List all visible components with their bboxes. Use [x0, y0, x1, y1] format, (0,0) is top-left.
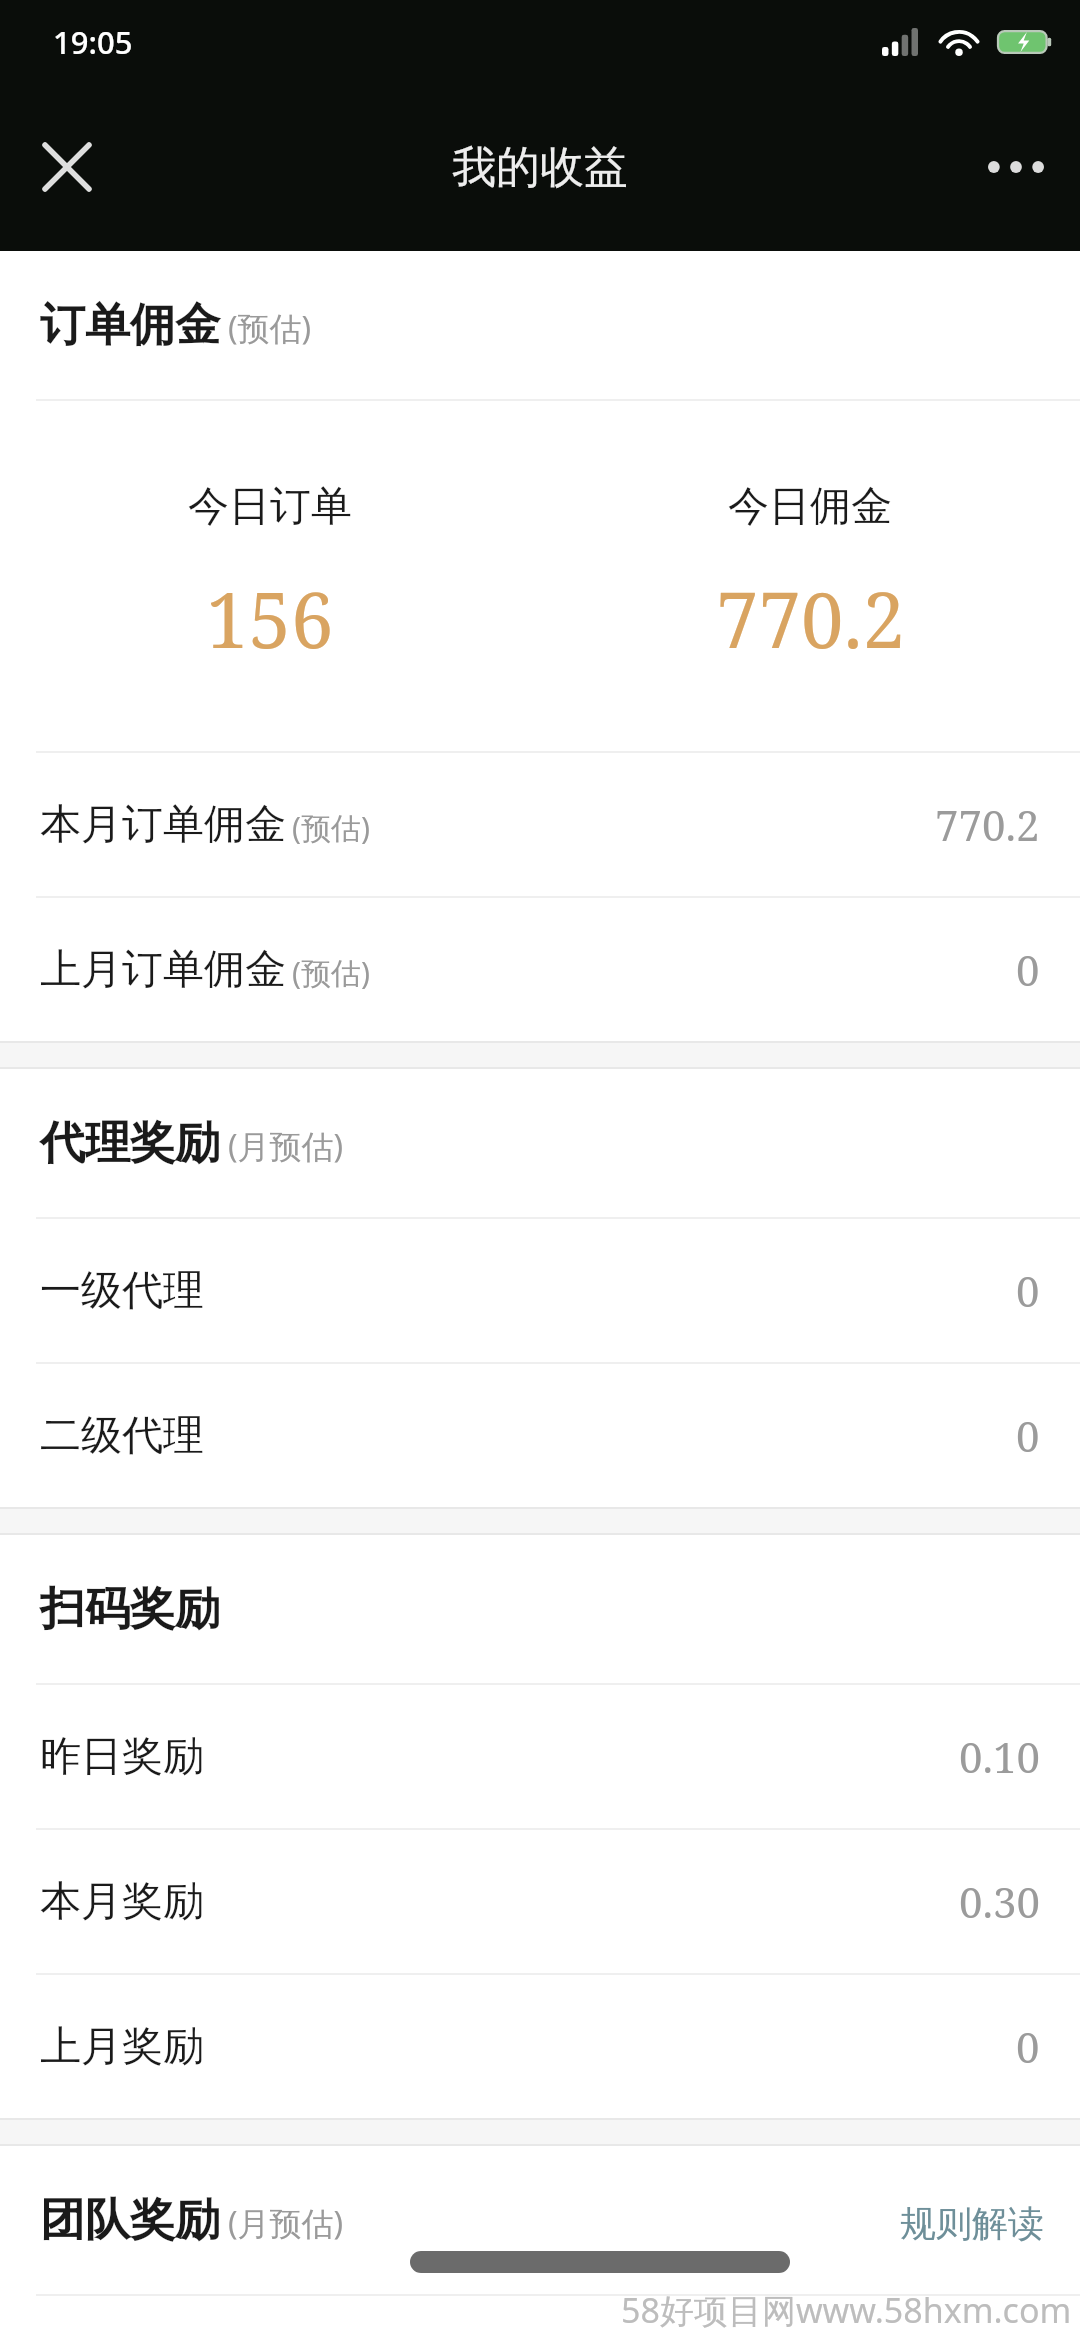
button[interactable]: Close	[30, 130, 104, 204]
staticText: 0.10	[959, 1728, 1040, 1785]
staticText: 0	[1016, 2018, 1040, 2075]
staticText: 团队奖励	[40, 2192, 220, 2249]
staticText: 0	[1016, 1407, 1040, 1464]
button[interactable]: 一级代理	[0, 1219, 1080, 1362]
staticText: 本月订单佣金	[40, 799, 286, 851]
button[interactable]: More options	[978, 129, 1054, 205]
button[interactable]: 二级代理	[0, 1364, 1080, 1507]
button[interactable]: 本月奖励	[0, 1830, 1080, 1973]
staticText: (预估)	[292, 807, 370, 848]
button[interactable]: 规则解读	[900, 2201, 1044, 2246]
staticText: 代理奖励	[40, 1115, 220, 1172]
staticText: 上月订单佣金	[40, 944, 286, 996]
staticText: 订单佣金	[40, 297, 220, 354]
staticText: 今日佣金	[728, 481, 892, 533]
button[interactable]: 上月奖励	[0, 1975, 1080, 2118]
staticText: 我的收益	[452, 140, 628, 195]
staticText: 0	[1016, 941, 1040, 998]
staticText: 扫码奖励	[40, 1581, 220, 1638]
button[interactable]: 今日佣金	[540, 481, 1080, 671]
button[interactable]: 昨日奖励	[0, 1685, 1080, 1828]
staticText: (月预估)	[228, 1124, 344, 1168]
staticText: 昨日奖励	[40, 1731, 204, 1783]
staticText: 本月奖励	[40, 1876, 204, 1928]
staticText: (预估)	[292, 952, 370, 993]
staticText: 0	[1016, 1262, 1040, 1319]
staticText: 770.2	[935, 796, 1040, 853]
staticText: (预估)	[228, 306, 312, 350]
staticText: 19:05	[53, 21, 133, 63]
staticText: 今日订单	[188, 481, 352, 533]
staticText: 一级代理	[40, 1265, 204, 1317]
button[interactable]: 本月订单佣金	[0, 753, 1080, 896]
staticText: 二级代理	[40, 1410, 204, 1462]
staticText: 58好项目网www.58hxm.com	[621, 2287, 1072, 2333]
staticText: 770.2	[716, 567, 905, 671]
button[interactable]: 今日订单	[0, 481, 540, 671]
staticText: 156	[206, 567, 334, 671]
staticText: 0.30	[959, 1873, 1040, 1930]
staticText: 上月奖励	[40, 2021, 204, 2073]
staticText: (月预估)	[228, 2201, 344, 2245]
button[interactable]: 上月订单佣金	[0, 898, 1080, 1041]
button[interactable]: 团队奖励	[0, 2146, 1080, 2294]
